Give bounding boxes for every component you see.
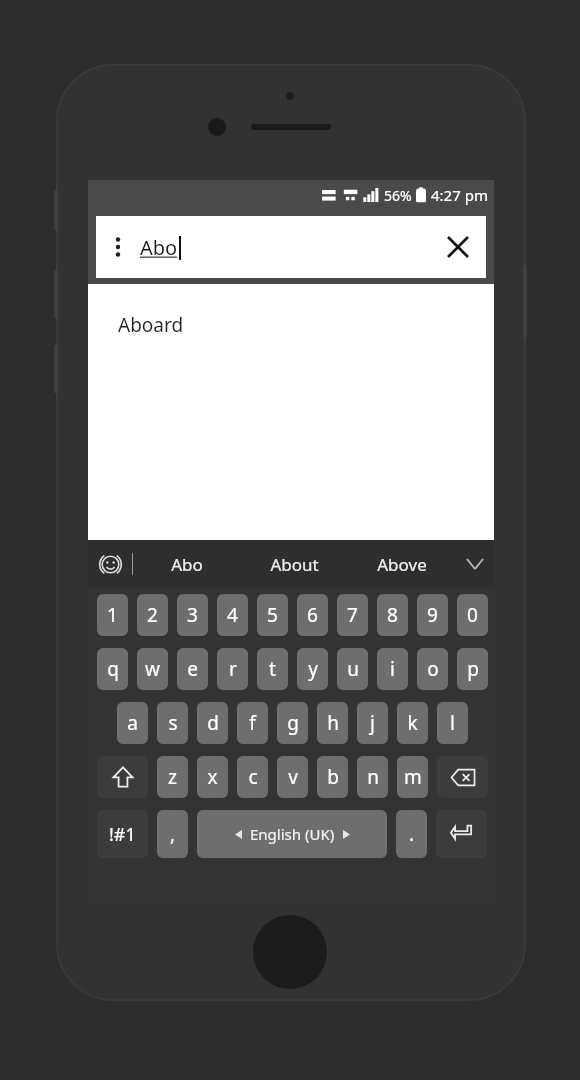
staticText: e: [187, 656, 198, 682]
staticText: h: [327, 710, 339, 736]
button[interactable]: .: [396, 810, 427, 858]
button[interactable]: w: [137, 648, 168, 690]
button[interactable]: 0: [457, 594, 488, 636]
staticText: ,: [170, 821, 176, 847]
staticText: Above: [377, 553, 427, 576]
button[interactable]: v: [277, 756, 308, 798]
button[interactable]: h: [317, 702, 348, 744]
staticText: a: [127, 710, 138, 736]
button[interactable]: Above: [348, 540, 456, 588]
button[interactable]: More suggestions: [456, 540, 494, 588]
staticText: o: [427, 656, 439, 682]
button[interactable]: About: [240, 540, 348, 588]
button[interactable]: Shift: [97, 756, 148, 798]
staticText: p: [467, 656, 479, 682]
staticText: 56%: [384, 186, 412, 205]
button[interactable]: 4: [217, 594, 248, 636]
staticText: m: [404, 764, 422, 790]
staticText: 2: [147, 602, 158, 628]
staticText: k: [407, 710, 418, 736]
button[interactable]: r: [217, 648, 248, 690]
button[interactable]: Enter: [436, 810, 487, 858]
button[interactable]: n: [357, 756, 388, 798]
staticText: r: [229, 656, 237, 682]
staticText: 7: [347, 602, 358, 628]
button[interactable]: p: [457, 648, 488, 690]
staticText: d: [207, 710, 219, 736]
button[interactable]: q: [97, 648, 128, 690]
staticText: Abo: [140, 234, 178, 261]
staticText: 3: [187, 602, 198, 628]
button[interactable]: Aboard: [88, 284, 494, 350]
staticText: .: [409, 821, 415, 847]
staticText: s: [168, 710, 178, 736]
staticText: t: [269, 656, 276, 682]
staticText: n: [367, 764, 379, 790]
staticText: Aboard: [118, 312, 184, 338]
staticText: z: [168, 764, 177, 790]
staticText: y: [308, 656, 318, 682]
button[interactable]: g: [277, 702, 308, 744]
staticText: x: [207, 764, 218, 790]
staticText: q: [107, 656, 119, 682]
staticText: !#1: [109, 822, 136, 847]
staticText: j: [370, 710, 375, 736]
button[interactable]: Space, English (UK): [197, 810, 387, 858]
button[interactable]: 9: [417, 594, 448, 636]
button[interactable]: Emoji: [88, 540, 132, 588]
button[interactable]: e: [177, 648, 208, 690]
button[interactable]: 3: [177, 594, 208, 636]
staticText: l: [450, 710, 455, 736]
staticText: 9: [427, 602, 438, 628]
button[interactable]: More options: [96, 216, 140, 278]
button[interactable]: b: [317, 756, 348, 798]
staticText: 4: [227, 602, 238, 628]
button[interactable]: f: [237, 702, 268, 744]
button[interactable]: 1: [97, 594, 128, 636]
staticText: 0: [467, 602, 478, 628]
button[interactable]: x: [197, 756, 228, 798]
staticText: 6: [307, 602, 318, 628]
button[interactable]: j: [357, 702, 388, 744]
button[interactable]: t: [257, 648, 288, 690]
button[interactable]: 8: [377, 594, 408, 636]
button[interactable]: !#1: [97, 810, 148, 858]
button[interactable]: 2: [137, 594, 168, 636]
button[interactable]: Clear search: [430, 216, 486, 278]
button[interactable]: l: [437, 702, 468, 744]
button[interactable]: Abo: [133, 540, 240, 588]
button[interactable]: ,: [157, 810, 188, 858]
staticText: i: [390, 656, 395, 682]
button[interactable]: 6: [297, 594, 328, 636]
staticText: 8: [387, 602, 398, 628]
staticText: English (UK): [250, 824, 335, 844]
staticText: c: [248, 764, 258, 790]
staticText: About: [270, 553, 319, 576]
button[interactable]: 7: [337, 594, 368, 636]
staticText: 5: [267, 602, 278, 628]
button[interactable]: o: [417, 648, 448, 690]
staticText: f: [249, 710, 256, 736]
button[interactable]: z: [157, 756, 188, 798]
button[interactable]: y: [297, 648, 328, 690]
button[interactable]: i: [377, 648, 408, 690]
button[interactable]: u: [337, 648, 368, 690]
button[interactable]: d: [197, 702, 228, 744]
staticText: 1: [107, 602, 118, 628]
button[interactable]: Backspace: [437, 756, 488, 798]
staticText: w: [145, 656, 160, 682]
staticText: 4:27 pm: [431, 185, 488, 205]
staticText: Abo: [171, 553, 203, 576]
button[interactable]: m: [397, 756, 428, 798]
button[interactable]: a: [117, 702, 148, 744]
staticText: g: [287, 710, 299, 736]
staticText: v: [288, 764, 298, 790]
button[interactable]: 5: [257, 594, 288, 636]
staticText: b: [327, 764, 339, 790]
staticText: u: [347, 656, 359, 682]
button[interactable]: c: [237, 756, 268, 798]
button[interactable]: s: [157, 702, 188, 744]
button[interactable]: k: [397, 702, 428, 744]
